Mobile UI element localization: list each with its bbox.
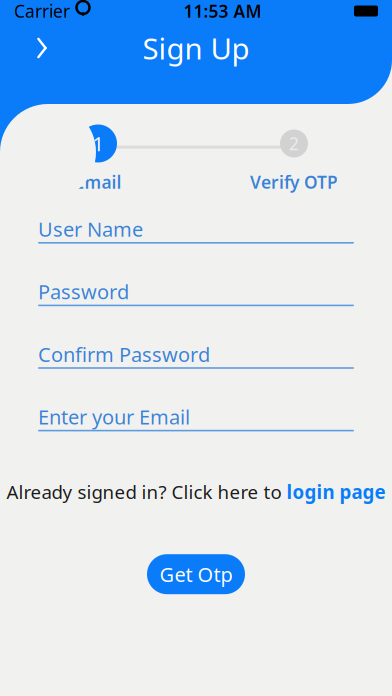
- button[interactable]: Already signed in? Click here to: [0, 473, 392, 510]
- staticText: Confirm Password: [38, 341, 210, 367]
- staticText: Get Otp: [159, 561, 232, 587]
- staticText: Verify OTP: [250, 170, 338, 193]
- button[interactable]: Enter your Email: [38, 404, 354, 431]
- staticText: Carrier: [14, 0, 70, 22]
- staticText: Password: [38, 278, 129, 305]
- button[interactable]: Back: [20, 26, 64, 70]
- staticText: login page: [286, 479, 385, 504]
- button[interactable]: Get Otp: [147, 554, 245, 594]
- staticText: 2: [289, 132, 299, 155]
- button[interactable]: User Name: [38, 216, 354, 244]
- staticText: 1: [92, 130, 103, 157]
- staticText: User Name: [38, 216, 143, 242]
- staticText: Sign Up: [142, 28, 249, 67]
- button[interactable]: Password: [38, 279, 354, 306]
- button[interactable]: Confirm Password: [38, 341, 354, 369]
- staticText: Email: [74, 170, 121, 193]
- staticText: 11:53 AM: [183, 0, 261, 22]
- staticText: Enter your Email: [38, 403, 190, 430]
- staticText: Already signed in? Click here to: [6, 479, 281, 504]
